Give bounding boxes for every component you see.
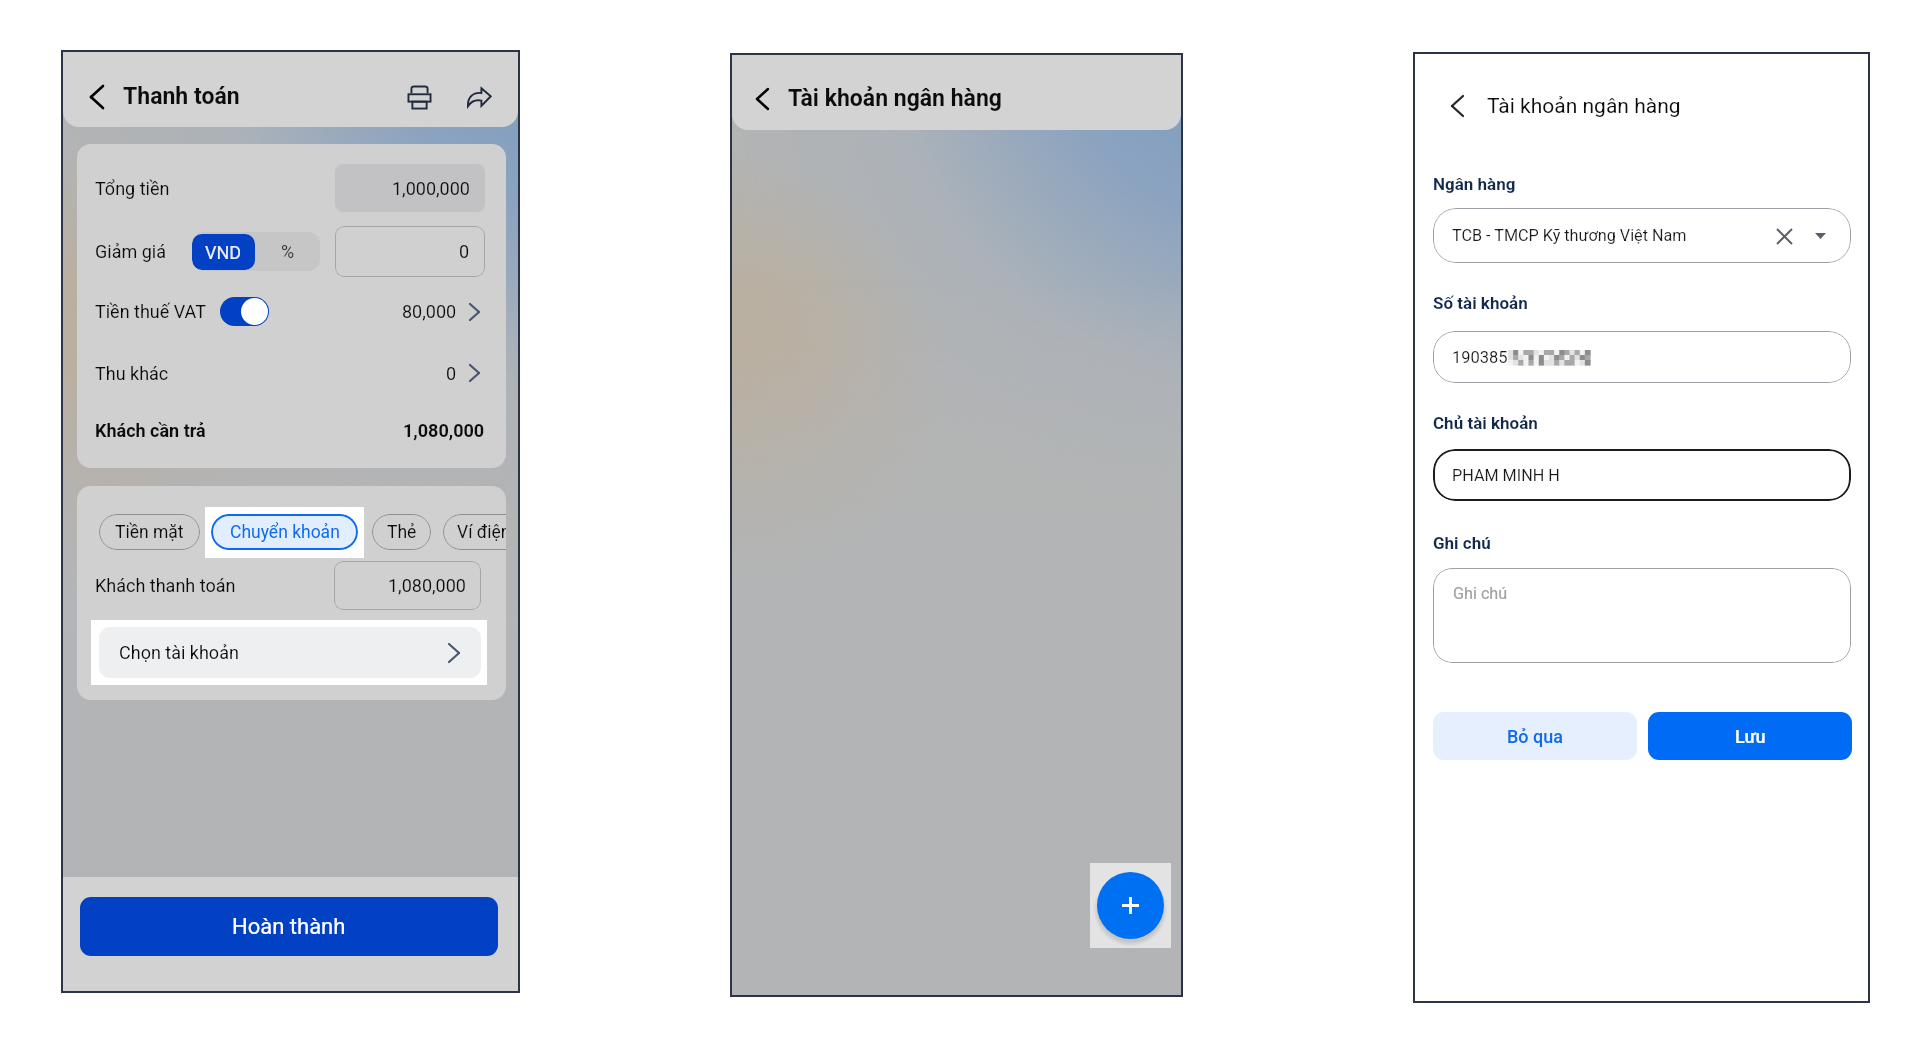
button[interactable]: 190385	[1433, 331, 1851, 383]
button[interactable]: Ví điện tử	[443, 514, 506, 550]
button[interactable]: Expand	[1809, 225, 1831, 247]
button[interactable]: TCB - TMCP Kỹ thương Việt Nam	[1433, 208, 1851, 263]
staticText: Tiền thuế VAT	[95, 301, 206, 322]
button[interactable]: Lưu	[1648, 712, 1852, 760]
staticText: 1,080,000	[388, 575, 466, 596]
staticText: Thanh toán	[123, 83, 240, 110]
button[interactable]: Back	[1441, 90, 1473, 122]
staticText: Số tài khoản	[1433, 293, 1528, 313]
staticText: Thu khác	[95, 363, 169, 384]
button[interactable]: Back	[746, 83, 778, 115]
staticText: %	[281, 241, 295, 262]
staticText: Ghi chú	[1453, 584, 1508, 603]
staticText: Lưu	[1735, 726, 1766, 747]
staticText: PHAM MINH H	[1452, 466, 1560, 485]
staticText: Chọn tài khoản	[119, 642, 239, 663]
staticText: Tiền mặt	[115, 522, 184, 543]
staticText: Tài khoản ngân hàng	[1487, 94, 1681, 119]
button[interactable]: VND	[192, 234, 255, 270]
button[interactable]: Share	[460, 78, 498, 116]
staticText: 0	[446, 363, 457, 384]
button[interactable]: Ghi chú	[1433, 568, 1851, 663]
button[interactable]: %	[255, 232, 320, 271]
staticText: Ngân hàng	[1433, 174, 1516, 194]
button[interactable]: Thẻ	[372, 514, 431, 550]
staticText: Hoàn thành	[232, 914, 346, 940]
button[interactable]: Add	[1090, 863, 1171, 948]
staticText: Chuyển khoản	[230, 522, 340, 543]
staticText: Thẻ	[387, 522, 417, 543]
staticText: Tổng tiền	[95, 178, 170, 199]
button[interactable]: 1,000,000	[335, 164, 485, 212]
button[interactable]: VAT toggle	[220, 297, 269, 326]
button[interactable]: Chuyển khoản	[211, 514, 358, 550]
staticText: Tài khoản ngân hàng	[788, 85, 1002, 112]
staticText: TCB - TMCP Kỹ thương Việt Nam	[1452, 226, 1687, 245]
staticText: 0	[459, 241, 470, 262]
button[interactable]: Chọn tài khoản	[99, 627, 481, 678]
staticText: Chủ tài khoản	[1433, 413, 1538, 433]
staticText: VND	[205, 242, 242, 263]
button[interactable]: Tiền thuế VAT	[77, 291, 506, 332]
button[interactable]: Thu khác	[77, 355, 506, 391]
staticText: 80,000	[402, 301, 457, 322]
button[interactable]: Hoàn thành	[80, 897, 498, 956]
staticText: Ghi chú	[1433, 533, 1491, 553]
button[interactable]: PHAM MINH H	[1433, 449, 1851, 501]
staticText: 1,000,000	[392, 178, 470, 199]
button[interactable]: Tiền mặt	[99, 514, 200, 550]
staticText: Giảm giá	[95, 241, 166, 262]
staticText: Khách thanh toán	[95, 575, 236, 596]
staticText: Khách cần trả	[95, 420, 206, 441]
button[interactable]: Bỏ qua	[1433, 712, 1637, 760]
staticText: 190385	[1452, 348, 1508, 367]
button[interactable]: Back	[80, 80, 114, 114]
button[interactable]: Print	[400, 78, 438, 116]
button[interactable]: Clear	[1771, 223, 1797, 249]
staticText: 1,080,000	[403, 420, 485, 441]
staticText: Bỏ qua	[1507, 726, 1563, 747]
button[interactable]: 1,080,000	[334, 561, 481, 610]
staticText: Ví điện tử	[457, 522, 506, 543]
button[interactable]: 0	[335, 226, 485, 277]
